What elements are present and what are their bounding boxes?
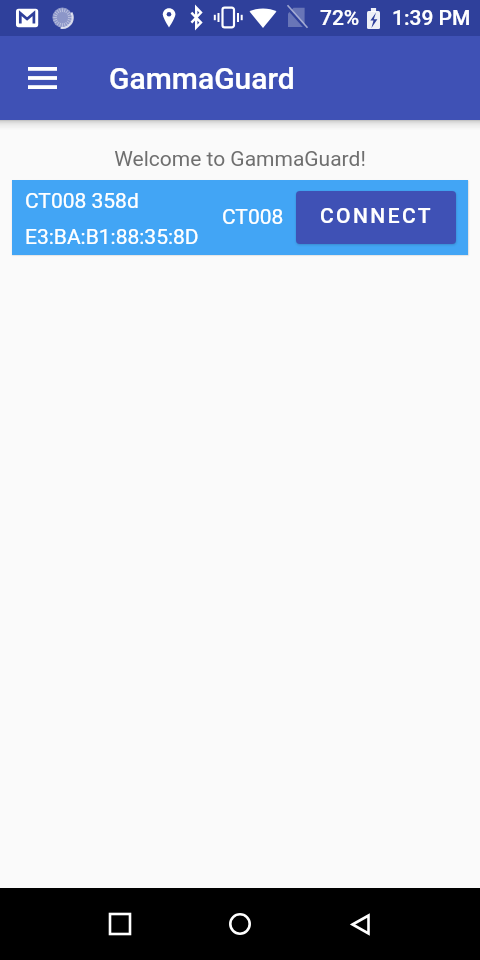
button[interactable]: Open navigation menu [14,50,70,106]
button[interactable]: Back [336,900,384,948]
staticText: CONNECT [320,204,433,229]
button[interactable]: CONNECT [296,191,456,244]
button[interactable]: Recent apps [96,900,144,948]
staticText: CT008 358d [25,189,139,214]
staticText: GammaGuard [109,61,295,96]
staticText: 1:39 PM [392,6,471,31]
staticText: E3:BA:B1:88:35:8D [25,225,199,250]
button[interactable]: Home [216,900,264,948]
staticText: CT008 [222,205,284,230]
button[interactable]: CT008 358d [12,180,468,255]
staticText: 72% [320,6,360,31]
staticText: Welcome to GammaGuard! [0,147,480,172]
